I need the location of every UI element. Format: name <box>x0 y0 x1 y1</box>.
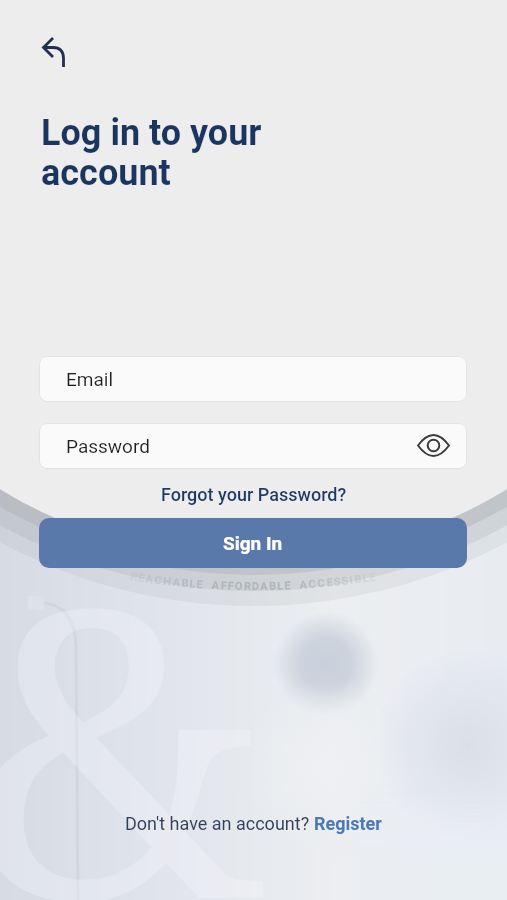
staticText: Sign In <box>223 532 283 554</box>
staticText: Password <box>66 435 150 457</box>
staticText: Register <box>314 813 382 834</box>
staticText: & <box>0 470 267 900</box>
staticText: Forgot your Password? <box>161 484 347 505</box>
staticText: Email <box>66 368 114 390</box>
staticText: Log in to your account <box>41 112 262 194</box>
staticText: Don't have an account? <box>125 813 314 834</box>
